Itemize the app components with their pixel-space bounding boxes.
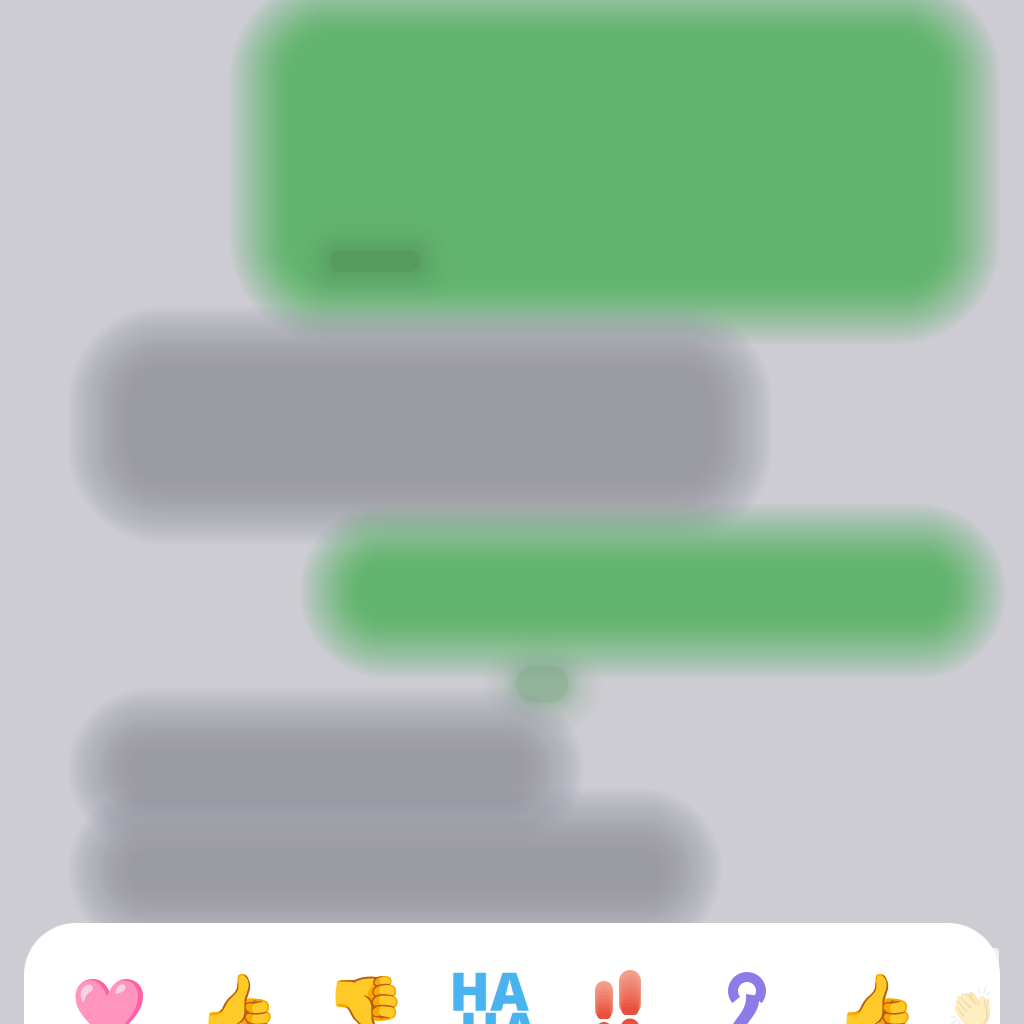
button[interactable]: Haha	[433, 950, 545, 1024]
staticText: 👍	[834, 970, 917, 1024]
button[interactable]: Exclamation	[562, 948, 674, 1024]
staticText: 👍	[196, 970, 279, 1024]
button[interactable]: Thumbs up	[820, 952, 932, 1024]
staticText: 👎	[323, 972, 406, 1024]
staticText: 👏	[947, 985, 997, 1024]
staticText: 🩷	[71, 975, 147, 1024]
button[interactable]: Dislike	[309, 954, 421, 1024]
button[interactable]: Like	[182, 952, 294, 1024]
button[interactable]: Question	[691, 960, 803, 1024]
button[interactable]: More reactions	[942, 978, 1002, 1024]
staticText: HA	[459, 995, 539, 1024]
button[interactable]: Love	[53, 954, 165, 1024]
staticText: HA	[449, 955, 529, 1024]
